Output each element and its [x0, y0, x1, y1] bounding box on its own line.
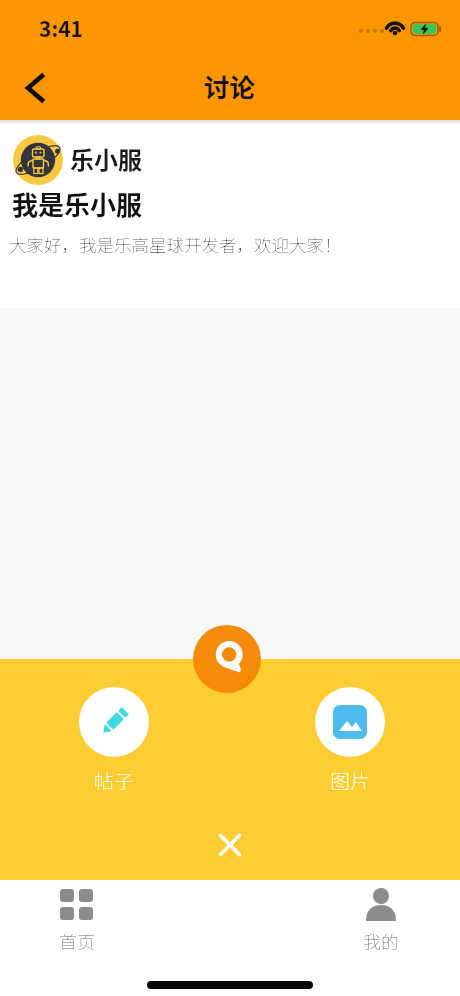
- button[interactable]: 乐小服: [13, 135, 460, 185]
- button[interactable]: [16, 70, 56, 110]
- staticText: 讨论: [204, 67, 256, 104]
- button[interactable]: 我的: [356, 888, 406, 954]
- staticText: 帖子: [94, 766, 134, 795]
- staticText: 大家好，我是乐高星球开发者，欢迎大家！: [9, 232, 342, 257]
- button[interactable]: [193, 625, 261, 693]
- staticText: 3:41: [39, 13, 83, 43]
- button[interactable]: 图片: [315, 687, 385, 795]
- staticText: 我的: [363, 928, 399, 954]
- button[interactable]: 帖子: [79, 687, 149, 795]
- staticText: 我是乐小服: [12, 185, 143, 223]
- button[interactable]: [208, 823, 252, 867]
- staticText: 乐小服: [70, 141, 142, 176]
- button[interactable]: 首页: [52, 888, 102, 954]
- staticText: 首页: [59, 928, 95, 954]
- staticText: 图片: [330, 766, 370, 795]
- button[interactable]: 乐小服: [0, 120, 460, 308]
